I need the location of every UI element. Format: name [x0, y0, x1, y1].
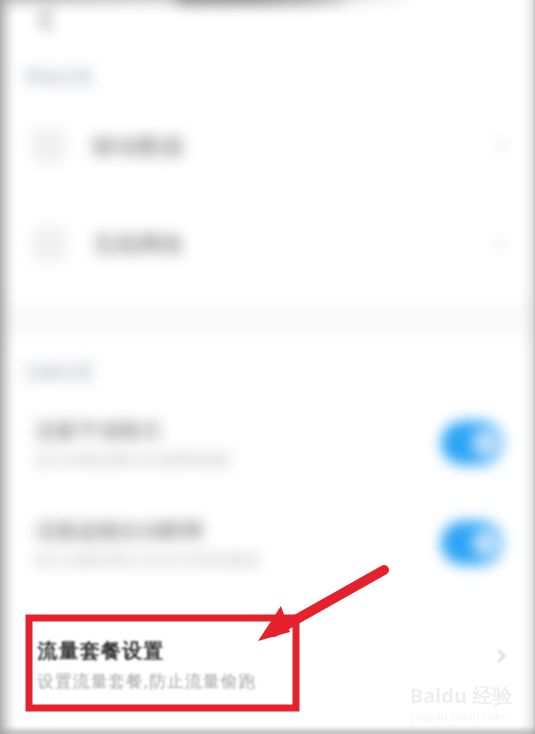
button[interactable]: 移动数据 — [0, 105, 535, 187]
staticText: 设置流量套餐,防止流量偷跑 — [37, 669, 256, 692]
button[interactable]: 无线网络 — [0, 203, 535, 285]
staticText: 流量套餐设置 — [37, 639, 165, 664]
button[interactable]: Back — [31, 4, 61, 34]
staticText: 流量设置 — [25, 362, 93, 383]
staticText: 无线网络 — [92, 230, 184, 259]
staticText: 流量节省模式 — [35, 418, 161, 444]
staticText: 移动数据 — [92, 132, 184, 161]
staticText: jingyan.baidu.com — [410, 709, 506, 724]
button[interactable]: 流量节省模式 — [0, 396, 535, 472]
staticText: 流量超额自动断网 — [35, 518, 203, 544]
button[interactable]: 流量套餐设置 — [0, 620, 535, 700]
button[interactable]: 流量超额自动断网 — [0, 496, 535, 572]
staticText: 网络设置 — [25, 67, 93, 88]
staticText: 超出套餐流量时自动断网提醒 — [35, 451, 230, 470]
staticText: Baidu 经验 — [410, 682, 513, 709]
